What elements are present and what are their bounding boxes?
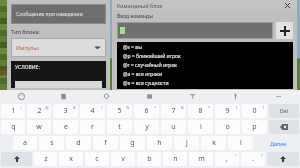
staticText: z [44, 154, 48, 164]
button[interactable]: f [93, 136, 118, 150]
button[interactable]: r [80, 120, 105, 134]
button[interactable]: 8 [188, 104, 213, 118]
button[interactable]: z [34, 152, 57, 166]
staticText: @a = все игроки [123, 71, 163, 78]
button[interactable]: Clipboard [42, 90, 85, 103]
button[interactable]: 6 [134, 104, 159, 118]
button[interactable]: a [13, 136, 37, 150]
button[interactable]: m [189, 152, 213, 166]
staticText: s [50, 138, 54, 148]
button[interactable]: . [241, 152, 265, 166]
staticText: УСЛОВИЕ: [15, 64, 40, 71]
button[interactable]: u [161, 120, 186, 134]
button[interactable]: Translate [171, 90, 214, 103]
staticText: 1 [11, 106, 16, 116]
button[interactable]: l [228, 136, 253, 150]
button[interactable]: v [111, 152, 135, 166]
button[interactable]: Далее [258, 136, 299, 150]
button[interactable]: s [39, 136, 64, 150]
button[interactable]: b [137, 152, 161, 166]
button[interactable]: 9 [215, 104, 240, 118]
button[interactable]: 7 [161, 104, 186, 118]
staticText: a [23, 138, 27, 148]
button[interactable]: w [27, 120, 51, 134]
button[interactable]: Voice input [214, 90, 257, 103]
button[interactable]: e [53, 120, 78, 134]
button[interactable]: , [215, 152, 239, 166]
staticText: 7 [171, 106, 176, 116]
staticText: * [208, 105, 211, 110]
button[interactable]: q [1, 120, 25, 134]
staticText: e [64, 122, 68, 132]
button[interactable]: Сообщение при наведении [11, 4, 106, 24]
staticText: y [145, 122, 149, 132]
button[interactable]: 4 [80, 104, 105, 118]
button[interactable]: j [174, 136, 199, 150]
button[interactable]: More [257, 90, 300, 103]
button[interactable]: d [66, 136, 91, 150]
staticText: @e = все сущности [123, 80, 169, 87]
staticText: m [198, 154, 205, 164]
button[interactable]: g [120, 136, 145, 150]
button[interactable]: 0 [242, 104, 267, 118]
button[interactable]: Emoji [0, 90, 42, 103]
button[interactable]: Del [269, 104, 299, 118]
staticText: @p = ближайший игрок [123, 53, 181, 60]
staticText: i [200, 122, 202, 132]
staticText: 8 [198, 106, 203, 116]
staticText: @r = случайный игрок [123, 62, 178, 69]
staticText: ) [263, 105, 265, 110]
button[interactable]: k [201, 136, 226, 150]
staticText: x [69, 154, 73, 164]
button[interactable]: h [147, 136, 172, 150]
staticText: 4 [90, 106, 95, 116]
staticText: k [212, 138, 216, 148]
button[interactable]: Импульс [11, 38, 106, 57]
button[interactable] [117, 22, 273, 39]
staticText: ~ [20, 105, 23, 110]
button[interactable]: o [215, 120, 240, 134]
staticText: f [104, 138, 107, 148]
button[interactable]: p [242, 120, 267, 134]
button[interactable]: Add command [276, 22, 293, 39]
staticText: t [118, 122, 121, 132]
staticText: 0 [252, 106, 257, 116]
button[interactable]: Shift [1, 152, 32, 166]
staticText: 3 [63, 106, 68, 116]
button[interactable]: 3 [53, 104, 78, 118]
button[interactable]: c [85, 152, 109, 166]
staticText: o [225, 122, 230, 132]
staticText: Сообщение при наведении [16, 11, 83, 18]
staticText: Далее [270, 140, 287, 147]
staticText: j [186, 138, 188, 148]
button[interactable]: 5 [107, 104, 132, 118]
staticText: % [126, 105, 130, 110]
staticText: n [173, 154, 178, 164]
button[interactable]: i [188, 120, 213, 134]
staticText: , [226, 154, 228, 164]
button[interactable]: y [134, 120, 159, 134]
staticText: @s = вы [123, 44, 142, 51]
button[interactable]: t [107, 120, 132, 134]
staticText: g [130, 138, 135, 148]
staticText: Тип блока: [11, 28, 40, 35]
button[interactable]: n [163, 152, 187, 166]
staticText: q [11, 122, 16, 132]
button[interactable]: 1 [1, 104, 25, 118]
staticText: Del [280, 108, 288, 115]
staticText: v [121, 154, 125, 164]
staticText: ^ [154, 105, 157, 110]
staticText: 2 [37, 106, 42, 116]
button[interactable]: Backspace [269, 120, 299, 134]
button[interactable]: Close [283, 1, 292, 10]
button[interactable]: x [59, 152, 83, 166]
button[interactable]: GIF [128, 90, 171, 103]
staticText: @ [45, 105, 49, 110]
button[interactable]: Stickers [85, 90, 128, 103]
staticText: Ввод команды [117, 13, 154, 20]
button[interactable]: 2 [27, 104, 51, 118]
staticText: c [95, 154, 99, 164]
button[interactable]: Shift [267, 152, 299, 166]
staticText: b [147, 154, 152, 164]
